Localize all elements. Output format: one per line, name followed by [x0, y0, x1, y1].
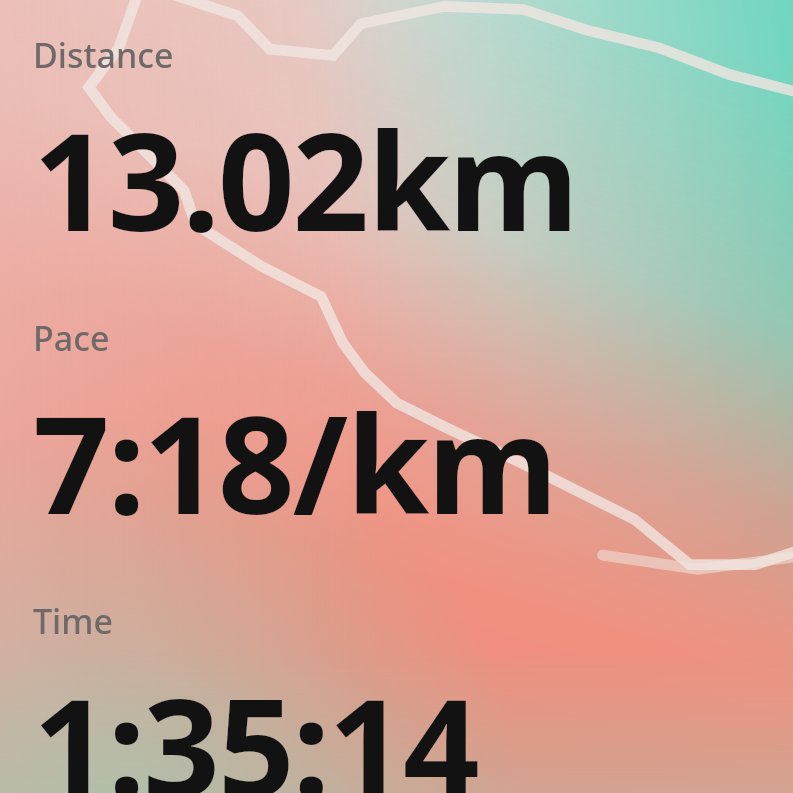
staticText: 1:35:14: [33, 654, 478, 793]
button[interactable]: Time 1 hour 35 minutes 14 seconds: [33, 598, 785, 793]
button[interactable]: Distance 13.02 kilometres: [33, 32, 785, 271]
button[interactable]: Pace 7:18 per kilometre: [33, 315, 785, 554]
staticText: 13.02km: [33, 88, 577, 271]
staticText: Distance: [33, 32, 174, 78]
staticText: 7:18/km: [33, 371, 556, 554]
staticText: Time: [33, 598, 114, 644]
staticText: Pace: [33, 315, 110, 361]
